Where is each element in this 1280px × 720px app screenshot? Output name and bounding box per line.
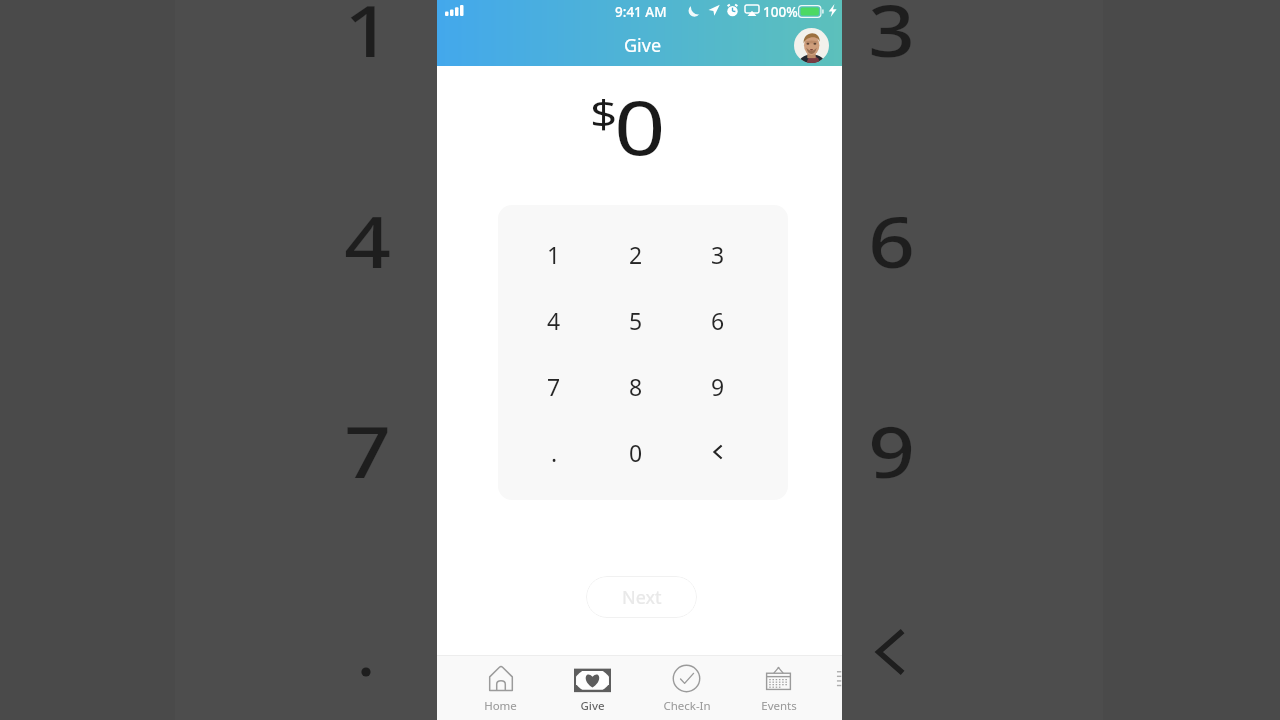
- staticText: 8: [629, 371, 643, 402]
- button[interactable]: Give: [546, 656, 639, 720]
- staticText: 9: [868, 401, 915, 499]
- button[interactable]: Next: [586, 576, 697, 618]
- button[interactable]: 5: [595, 288, 677, 352]
- staticText: Give: [624, 33, 662, 58]
- button[interactable]: 4: [513, 288, 595, 352]
- button[interactable]: Profile: [794, 28, 829, 63]
- staticText: Home: [484, 698, 517, 714]
- button[interactable]: 6: [677, 288, 759, 352]
- button[interactable]: 9: [677, 354, 759, 418]
- button[interactable]: 2: [595, 222, 677, 286]
- staticText: 9: [711, 371, 725, 402]
- button[interactable]: 3: [677, 222, 759, 286]
- staticText: 9:41 AM: [615, 3, 667, 21]
- button[interactable]: Home: [454, 656, 547, 720]
- staticText: Events: [761, 698, 797, 714]
- staticText: Next: [622, 585, 662, 610]
- staticText: 4: [344, 191, 391, 289]
- staticText: 6: [711, 305, 725, 336]
- other: Backspace: [709, 443, 727, 461]
- staticText: 3: [868, 0, 915, 78]
- button[interactable]: 8: [595, 354, 677, 418]
- staticText: 1: [344, 0, 391, 78]
- button[interactable]: 7: [513, 354, 595, 418]
- button[interactable]: .: [513, 420, 595, 484]
- staticText: 5: [629, 305, 643, 336]
- staticText: Give: [580, 698, 605, 714]
- button[interactable]: Events: [732, 656, 825, 720]
- staticText: 4: [547, 305, 561, 336]
- staticText: 2: [629, 239, 643, 270]
- staticText: $: [590, 87, 617, 139]
- staticText: 0: [629, 437, 643, 468]
- button[interactable]: 0: [595, 420, 677, 484]
- staticText: 6: [868, 191, 915, 289]
- staticText: Check-In: [663, 698, 711, 714]
- button[interactable]: Check-In: [640, 656, 733, 720]
- button[interactable]: More: [825, 656, 842, 720]
- button[interactable]: 1: [513, 222, 595, 286]
- staticText: .: [551, 437, 558, 468]
- staticText: 100%: [763, 3, 798, 21]
- staticText: 7: [547, 371, 561, 402]
- staticText: 0: [614, 75, 666, 177]
- button[interactable]: Backspace: [677, 420, 759, 484]
- staticText: 3: [711, 239, 725, 270]
- staticText: 7: [344, 401, 391, 499]
- staticText: 1: [547, 239, 561, 270]
